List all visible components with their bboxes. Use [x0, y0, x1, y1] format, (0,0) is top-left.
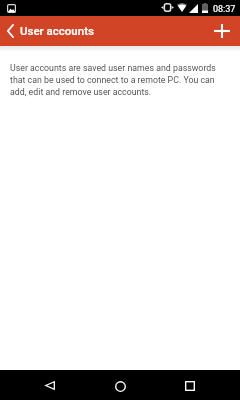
button[interactable]: Add account	[206, 16, 240, 46]
button[interactable]: Recent apps	[176, 372, 204, 398]
button[interactable]: Home	[106, 372, 134, 398]
staticText: 08:37	[213, 4, 236, 15]
staticText: User accounts	[20, 24, 94, 37]
button[interactable]: Navigate up	[0, 16, 20, 46]
staticText: User accounts are saved user names and p…	[10, 63, 227, 98]
button[interactable]: Back	[36, 371, 64, 397]
